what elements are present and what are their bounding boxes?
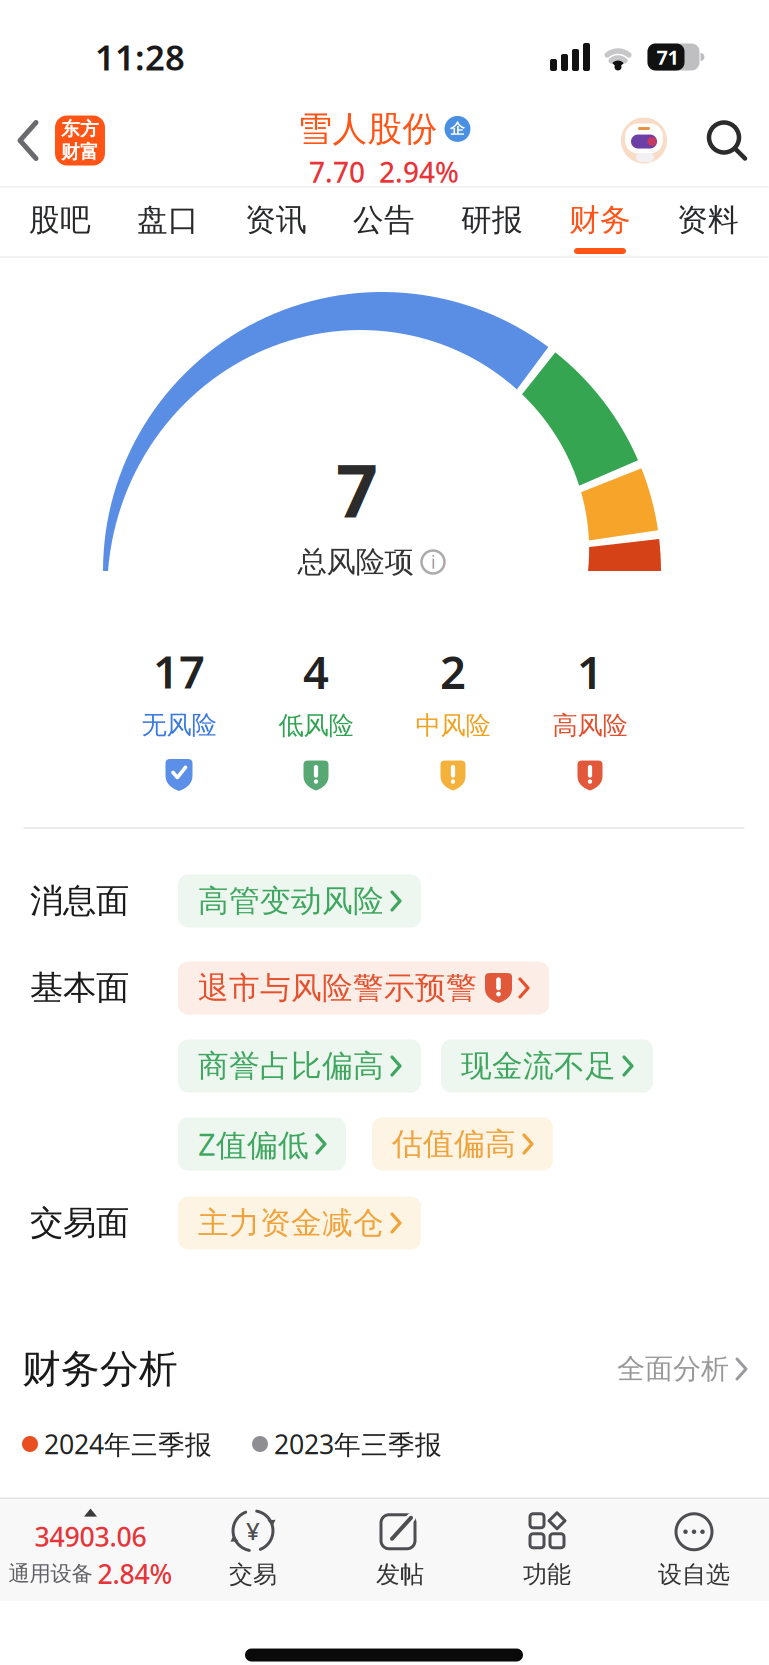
button[interactable]: 发帖 (326, 1511, 473, 1589)
staticText: 发帖 (376, 1560, 424, 1589)
staticText: 东方 (61, 118, 99, 140)
staticText: 全面分析 (617, 1352, 729, 1386)
staticText: 2023年三季报 (274, 1426, 442, 1462)
button[interactable]: 东方财富 (40, 115, 105, 165)
staticText: 基本面 (30, 967, 129, 1008)
staticText: 雪人股份 (297, 108, 437, 150)
staticText: 高管变动风险 (198, 882, 384, 920)
staticText: 资讯 (245, 201, 307, 239)
button[interactable]: 总风险项说明 (421, 550, 444, 573)
staticText: 34903.06 (34, 1519, 146, 1554)
staticText: 高风险 (552, 710, 627, 741)
button[interactable]: Z值偏低 (178, 1117, 346, 1170)
button[interactable]: 估值偏高 (372, 1117, 553, 1170)
staticText: 股吧 (29, 201, 91, 239)
staticText: 主力资金减仓 (198, 1204, 384, 1242)
staticText: 交易面 (30, 1202, 129, 1243)
button[interactable]: 盘口 (135, 201, 201, 239)
staticText: 消息面 (30, 880, 129, 921)
staticText: 低风险 (278, 710, 353, 741)
staticText: 7.70 2.94% (309, 153, 459, 190)
button[interactable]: 设自选 (620, 1511, 767, 1589)
button[interactable]: 通用设备指数 (1, 1509, 179, 1591)
button[interactable]: 主力资金减仓 (178, 1196, 421, 1249)
staticText: 财务分析 (22, 1345, 178, 1393)
staticText: 退市与风险警示预警 (198, 969, 477, 1007)
staticText: 2.84% (97, 1556, 172, 1591)
staticText: 研报 (461, 201, 523, 239)
button[interactable]: 全面分析 (617, 1352, 747, 1386)
button[interactable]: Search (667, 120, 769, 160)
staticText: 11:28 (95, 34, 185, 80)
staticText: 通用设备 (8, 1561, 92, 1587)
staticText: 1 (577, 641, 603, 702)
staticText: 中风险 (415, 710, 490, 741)
staticText: 商誉占比偏高 (198, 1047, 384, 1085)
button[interactable]: 公告 (351, 201, 417, 239)
staticText: 企 (450, 120, 465, 138)
staticText: 7 (336, 440, 378, 538)
staticText: 2 (440, 641, 466, 702)
staticText: i (431, 550, 435, 573)
staticText: 2024年三季报 (44, 1426, 212, 1462)
staticText: 功能 (523, 1560, 571, 1589)
button[interactable]: 财务 (567, 201, 633, 239)
button[interactable]: 资讯 (243, 201, 309, 239)
staticText: Z值偏低 (198, 1124, 309, 1164)
button[interactable]: 研报 (459, 201, 525, 239)
button[interactable]: ¥ (179, 1511, 326, 1589)
staticText: 估值偏高 (392, 1125, 516, 1163)
button[interactable]: 现金流不足 (441, 1039, 653, 1092)
button[interactable]: 资料 (675, 201, 741, 239)
staticText: 盘口 (137, 201, 199, 239)
staticText: 公告 (353, 201, 415, 239)
staticText: 无风险 (141, 709, 216, 740)
staticText: 总风险项 (297, 544, 413, 580)
button[interactable]: Back (0, 120, 40, 160)
staticText: 设自选 (658, 1560, 730, 1589)
button[interactable]: 功能 (473, 1511, 620, 1589)
staticText: 资料 (677, 201, 739, 239)
staticText: 17 (153, 641, 205, 701)
staticText: 财务 (569, 201, 631, 239)
staticText: 71 (656, 44, 678, 70)
button[interactable]: 高管变动风险 (178, 874, 421, 927)
staticText: 财富 (61, 140, 99, 163)
staticText: 交易 (229, 1560, 277, 1589)
button[interactable]: 退市与风险警示预警 (178, 961, 549, 1014)
staticText: ¥ (246, 1515, 260, 1547)
button[interactable]: AI assistant (621, 117, 667, 163)
staticText: 4 (303, 641, 329, 702)
staticText: 现金流不足 (461, 1047, 616, 1085)
button[interactable]: 股吧 (27, 201, 93, 239)
button[interactable]: 商誉占比偏高 (178, 1039, 421, 1092)
